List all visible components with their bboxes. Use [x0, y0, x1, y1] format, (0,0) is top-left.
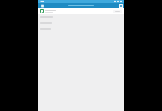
button[interactable] — [38, 26, 124, 32]
button[interactable] — [113, 10, 122, 13]
button[interactable] — [38, 14, 124, 20]
button[interactable] — [38, 8, 124, 14]
button[interactable] — [38, 20, 124, 26]
button[interactable]: Menu — [40, 3, 45, 8]
button[interactable]: Account — [119, 4, 123, 8]
